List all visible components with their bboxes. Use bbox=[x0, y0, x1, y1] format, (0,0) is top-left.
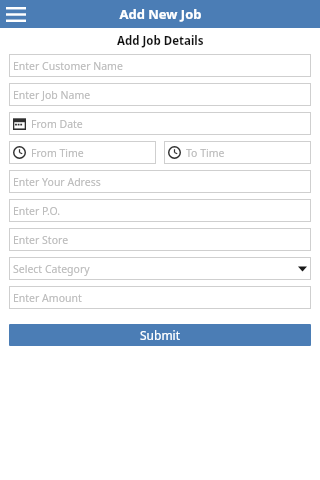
staticText: To Time bbox=[186, 146, 307, 160]
button[interactable]: Enter Job Name bbox=[9, 83, 311, 106]
button[interactable]: Select Category bbox=[9, 257, 311, 280]
staticText: Enter Customer Name bbox=[13, 59, 307, 73]
button[interactable]: From Time bbox=[9, 141, 156, 164]
button[interactable]: Enter P.O. bbox=[9, 199, 311, 222]
staticText: Enter P.O. bbox=[13, 204, 307, 218]
staticText: Enter Your Adress bbox=[13, 175, 307, 189]
button[interactable]: Enter Store bbox=[9, 228, 311, 251]
staticText: From Date bbox=[31, 117, 307, 131]
button[interactable]: Enter Your Adress bbox=[9, 170, 311, 193]
staticText: Enter Job Name bbox=[13, 88, 307, 102]
button[interactable]: From Date bbox=[9, 112, 311, 135]
button[interactable]: To Time bbox=[164, 141, 311, 164]
staticText: Add New Job bbox=[119, 5, 202, 23]
button[interactable]: Open navigation menu bbox=[5, 3, 27, 25]
staticText: Enter Store bbox=[13, 233, 307, 247]
button[interactable]: Enter Amount bbox=[9, 286, 311, 309]
staticText: Select Category bbox=[13, 262, 298, 276]
staticText: Add Job Details bbox=[117, 33, 204, 49]
staticText: Enter Amount bbox=[13, 291, 307, 305]
staticText: From Time bbox=[31, 146, 152, 160]
staticText: Submit bbox=[140, 327, 181, 343]
button[interactable]: Submit bbox=[9, 324, 311, 346]
button[interactable]: Enter Customer Name bbox=[9, 54, 311, 77]
